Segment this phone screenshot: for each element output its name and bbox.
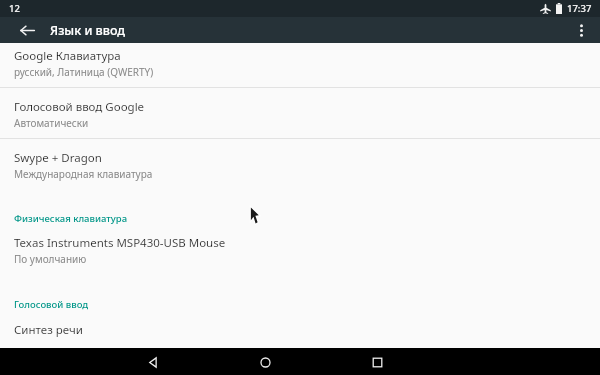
button[interactable]: Home bbox=[252, 349, 278, 375]
button[interactable]: Синтез речи bbox=[0, 312, 600, 346]
button[interactable]: Swype + Dragon bbox=[0, 139, 600, 189]
button[interactable]: Recent apps bbox=[364, 349, 390, 375]
button[interactable]: Texas Instruments MSP430-USB Mouse bbox=[0, 226, 600, 274]
staticText: Автоматически bbox=[14, 116, 89, 130]
staticText: русский, Латиница (QWERTY) bbox=[14, 65, 154, 79]
staticText: Голосовой ввод bbox=[14, 298, 89, 311]
staticText: Язык и ввод bbox=[50, 22, 126, 39]
staticText: Синтез речи bbox=[14, 322, 83, 338]
staticText: По умолчанию bbox=[14, 252, 87, 266]
button[interactable]: More options bbox=[568, 17, 594, 43]
button[interactable]: Голосовой ввод Google bbox=[0, 88, 600, 138]
staticText: Swype + Dragon bbox=[14, 150, 102, 166]
button[interactable]: Google Клавиатура bbox=[0, 43, 600, 87]
staticText: Международная клавиатура bbox=[14, 167, 153, 181]
button[interactable]: Navigate up bbox=[14, 17, 40, 43]
staticText: Физическая клавиатура bbox=[14, 212, 128, 225]
staticText: 17:37 bbox=[567, 2, 592, 15]
staticText: Texas Instruments MSP430-USB Mouse bbox=[14, 235, 226, 251]
staticText: Голосовой ввод Google bbox=[14, 99, 145, 115]
button[interactable]: Back bbox=[140, 349, 166, 375]
staticText: Google Клавиатура bbox=[14, 48, 121, 64]
staticText: 12 bbox=[9, 2, 20, 15]
